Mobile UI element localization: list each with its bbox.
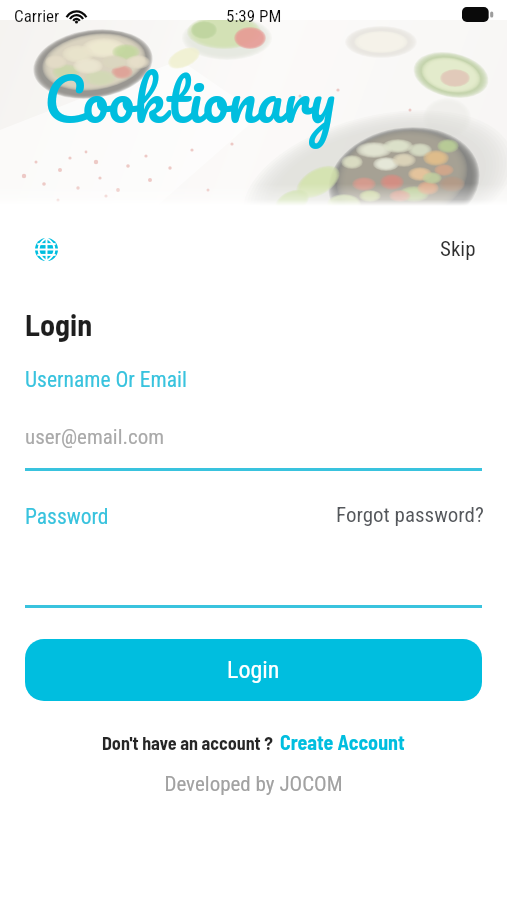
button[interactable]: Skip: [430, 231, 486, 267]
staticText: Login: [227, 656, 280, 684]
staticText: user@email.com: [25, 425, 165, 450]
button[interactable]: Forgot password?: [336, 503, 484, 528]
staticText: Carrier: [14, 6, 60, 26]
staticText: 5:39 PM: [226, 6, 282, 26]
button[interactable]: Create Account: [280, 730, 405, 754]
staticText: Password: [25, 504, 109, 529]
staticText: Skip: [440, 237, 476, 262]
button[interactable]: Change language: [26, 229, 66, 269]
staticText: Username Or Email: [25, 367, 187, 392]
staticText: Create Account: [280, 730, 405, 754]
staticText: Cooktionary: [44, 49, 335, 149]
button[interactable]: Login: [25, 639, 482, 701]
staticText: Login: [25, 306, 93, 342]
staticText: Forgot password?: [336, 503, 484, 528]
staticText: Developed by JOCOM: [0, 772, 507, 797]
staticText: Don't have an account ?: [102, 732, 273, 754]
